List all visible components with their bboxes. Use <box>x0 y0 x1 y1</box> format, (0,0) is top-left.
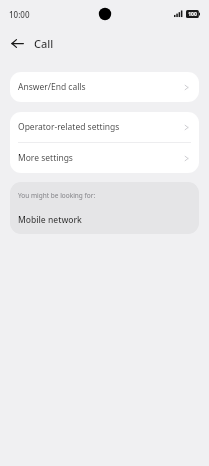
button[interactable]: Back <box>6 32 28 54</box>
staticText: Mobile network <box>18 214 82 226</box>
button[interactable]: Mobile network <box>10 209 199 231</box>
staticText: Answer/End calls <box>18 81 86 93</box>
staticText: Call <box>34 36 54 51</box>
button[interactable]: Answer/End calls <box>10 72 199 102</box>
staticText: 10:00 <box>9 9 30 20</box>
staticText: More settings <box>18 152 73 164</box>
staticText: Operator-related settings <box>18 121 120 133</box>
button[interactable]: Operator-related settings <box>10 112 199 142</box>
staticText: You might be looking for: <box>18 191 96 200</box>
button[interactable]: More settings <box>10 143 199 173</box>
staticText: 100 <box>188 11 197 18</box>
